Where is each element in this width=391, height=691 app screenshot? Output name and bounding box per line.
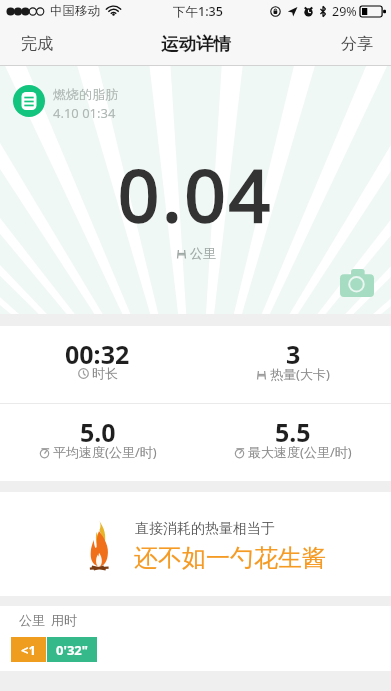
staticText: 下午1:35 [173, 3, 223, 20]
staticText: 还不如一勺花生酱 [134, 543, 326, 573]
staticText: 完成 [21, 34, 53, 54]
staticText: 0.04 [118, 145, 273, 243]
button[interactable]: 0'32" [47, 637, 97, 662]
staticText: 分享 [341, 34, 373, 54]
staticText: 中国移动 [50, 3, 100, 19]
staticText: 时长 [92, 365, 118, 381]
staticText: 29% [332, 3, 357, 20]
staticText: 运动详情 [161, 33, 231, 55]
button[interactable]: 完成 [0, 22, 67, 66]
staticText: 燃烧的脂肪 [53, 86, 118, 102]
button[interactable]: 分享 [327, 22, 391, 66]
staticText: 0'32" [56, 641, 88, 659]
staticText: 4.10 01:34 [53, 104, 116, 122]
staticText: 直接消耗的热量相当于 [135, 520, 275, 538]
staticText: 公里 [190, 245, 216, 261]
button[interactable]: Camera [340, 269, 374, 297]
staticText: 公里 [19, 612, 45, 628]
staticText: <1 [21, 641, 36, 659]
staticText: 热量(大卡) [270, 365, 330, 383]
button[interactable]: Activity type [13, 85, 45, 117]
staticText: 5.0 [80, 415, 116, 449]
staticText: 最大速度(公里/时) [248, 443, 352, 461]
staticText: 平均速度(公里/时) [53, 443, 157, 461]
staticText: 00:32 [65, 337, 130, 371]
staticText: 3 [286, 337, 301, 371]
staticText: 用时 [51, 612, 77, 628]
staticText: 5.5 [275, 415, 311, 449]
button[interactable]: <1 [11, 637, 46, 662]
